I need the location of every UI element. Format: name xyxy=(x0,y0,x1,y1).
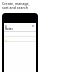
staticText: Create, manage, sort and search xyxy=(2,1,30,10)
staticText: Notes xyxy=(5,27,13,31)
